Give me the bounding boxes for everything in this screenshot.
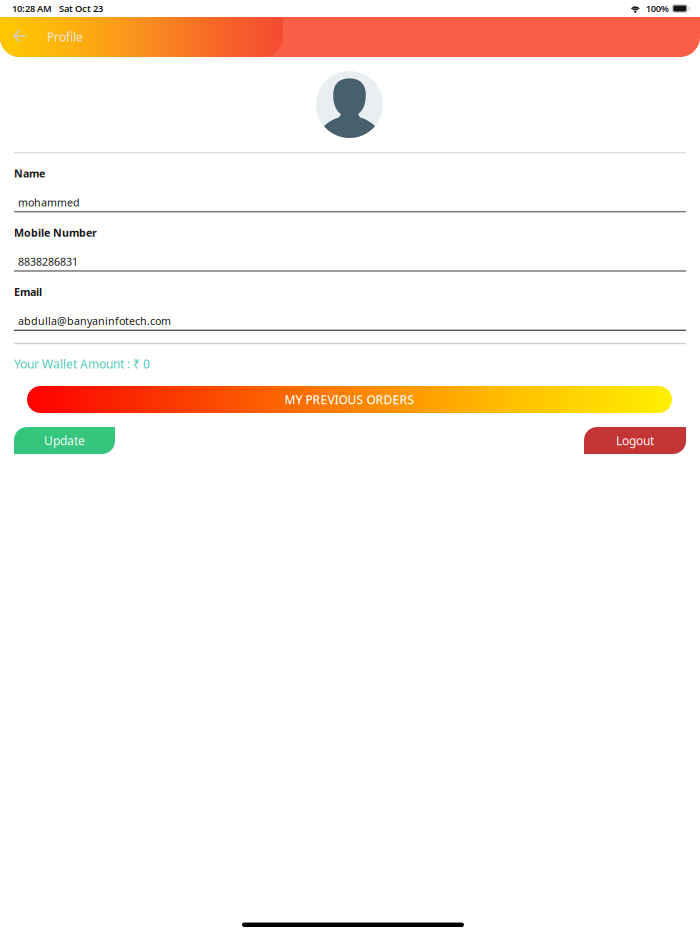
staticText: Email [14,285,42,299]
staticText: Logout [616,432,654,448]
button[interactable]: Logout [584,427,686,454]
button[interactable]: abdulla@banyaninfotech.com [14,301,686,331]
staticText: 8838286831 [18,254,78,269]
staticText: 100% [646,2,669,15]
button[interactable]: 8838286831 [14,241,686,271]
button[interactable]: mohammed [14,182,686,212]
staticText: 10:28 AM [12,2,52,15]
staticText: Mobile Number [14,225,97,240]
staticText: Name [14,166,45,180]
staticText: MY PREVIOUS ORDERS [284,391,414,407]
staticText: Your Wallet Amount : ₹ 0 [14,356,150,372]
staticText: mohammed [18,195,80,209]
button[interactable]: Back [0,17,40,57]
staticText: Profile [47,29,83,45]
button[interactable]: MY PREVIOUS ORDERS [27,386,672,413]
staticText: Update [44,432,85,448]
staticText: abdulla@banyaninfotech.com [18,314,171,328]
staticText: Sat Oct 23 [59,2,103,15]
button[interactable]: Update [14,427,115,454]
